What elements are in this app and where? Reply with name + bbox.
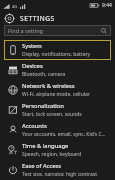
button[interactable]: Devices xyxy=(4,60,111,80)
staticText: Bluetooth, camera xyxy=(22,71,66,78)
staticText: Speech, region, keyboard xyxy=(22,151,82,158)
staticText: SETTINGS xyxy=(20,14,55,23)
staticText: 9:44 xyxy=(102,2,112,9)
staticText: Network & wireless xyxy=(22,82,75,90)
staticText: Devices xyxy=(22,62,43,70)
button[interactable]: Accounts xyxy=(4,120,111,140)
button[interactable]: Network & wireless xyxy=(4,80,111,100)
staticText: Time & language xyxy=(22,142,69,150)
staticText: Your accounts, email, sync, Kid's Corner xyxy=(22,131,108,138)
button[interactable]: Find a setting xyxy=(4,25,111,36)
staticText: Text size, narrator, high contrast xyxy=(22,171,97,178)
other: Search xyxy=(101,28,107,34)
staticText: Display, notifications, battery xyxy=(22,51,91,58)
staticText: System xyxy=(22,42,42,50)
staticText: Personalization xyxy=(22,102,64,110)
button[interactable]: Ease of Access xyxy=(4,160,111,180)
staticText: Ease of Access xyxy=(22,162,62,170)
button[interactable]: Personalization xyxy=(4,100,111,120)
other: Settings xyxy=(5,14,14,23)
staticText: Wi-Fi, airplane mode, cellular xyxy=(22,91,90,98)
button[interactable]: Time & language xyxy=(4,140,111,160)
button[interactable]: System xyxy=(4,40,111,60)
staticText: Find a setting xyxy=(8,27,43,34)
staticText: Start, lock screen, sounds xyxy=(22,111,82,118)
staticText: 4G xyxy=(12,4,18,9)
staticText: Accounts xyxy=(22,122,47,130)
